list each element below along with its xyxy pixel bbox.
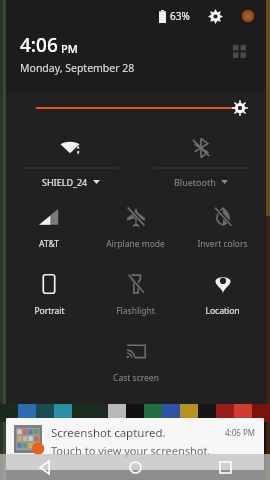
button[interactable]: Expand quick settings <box>226 38 252 64</box>
button[interactable]: Cast screen <box>92 330 179 384</box>
staticText: PM <box>61 41 78 56</box>
button[interactable]: Screenshot captured. <box>6 418 264 470</box>
button[interactable]: Back <box>0 454 90 480</box>
staticText: Invert colors <box>197 238 248 250</box>
button[interactable]: SHIELD_24 <box>6 128 136 188</box>
staticText: Cast screen <box>113 372 159 384</box>
staticText: Portrait <box>34 305 65 317</box>
button[interactable]: Bluetooth <box>136 128 266 188</box>
button[interactable]: Brightness <box>6 92 266 124</box>
button[interactable]: Settings <box>204 5 226 27</box>
staticText: SHIELD_24 <box>42 176 88 188</box>
button[interactable]: AT&T <box>6 196 92 250</box>
staticText: Location <box>205 305 240 317</box>
staticText: Monday, September 28 <box>20 61 135 75</box>
button[interactable]: Flashlight <box>92 263 179 317</box>
staticText: Touch to view your screenshot. <box>51 443 211 458</box>
button[interactable]: Recent apps <box>180 454 270 480</box>
button[interactable]: Airplane mode <box>92 196 179 250</box>
button[interactable]: Location <box>179 263 266 317</box>
staticText: Airplane mode <box>106 238 165 250</box>
button[interactable]: Portrait <box>6 263 92 317</box>
staticText: AT&T <box>39 238 59 250</box>
staticText: Bluetooth <box>174 176 216 188</box>
staticText: 63% <box>170 9 190 23</box>
staticText: Flashlight <box>116 305 155 317</box>
button[interactable]: User account <box>238 6 258 26</box>
staticText: 4:06 PM <box>225 427 256 438</box>
staticText: Screenshot captured. <box>51 425 166 441</box>
button[interactable]: Invert colors <box>179 196 266 250</box>
staticText: 4:06 <box>20 32 58 58</box>
button[interactable]: Home <box>90 454 180 480</box>
